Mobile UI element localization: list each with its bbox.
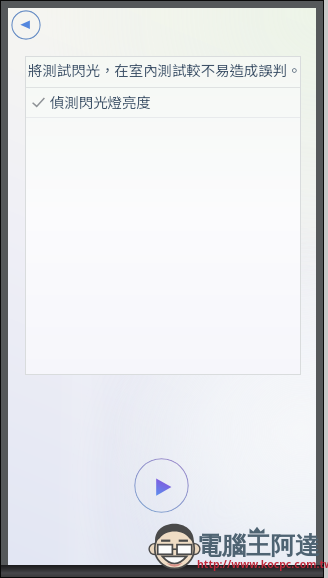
button[interactable]: Play: [134, 458, 189, 513]
staticText: 將測試閃光，在室內測試較不易造成誤判。: [28, 59, 301, 80]
button[interactable]: Back: [11, 10, 41, 40]
staticText: 電腦王阿達: [197, 530, 320, 561]
staticText: 偵測閃光燈亮度: [50, 91, 151, 112]
staticText: http://www.kocpc.com.tw: [197, 557, 328, 571]
button[interactable]: 偵測閃光燈亮度: [25, 88, 301, 117]
